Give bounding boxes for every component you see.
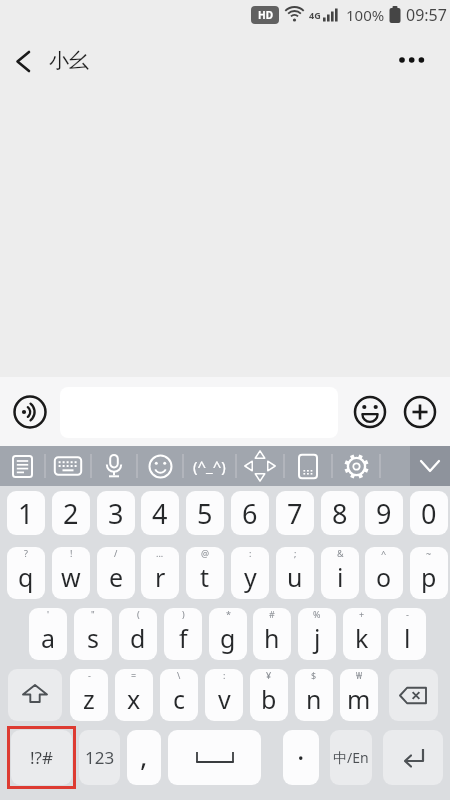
staticText: 1 (18, 495, 34, 532)
staticText: m (347, 682, 371, 716)
staticText: ) (182, 608, 185, 620)
staticText: + (359, 608, 365, 620)
staticText: 中/En (333, 748, 369, 767)
staticText: (^_^) (193, 456, 226, 476)
button[interactable]: @ (186, 547, 224, 599)
staticText: 2 (63, 495, 79, 532)
button[interactable]: 中/En (330, 730, 372, 785)
button[interactable]: - (70, 669, 108, 721)
button[interactable] (91, 446, 137, 486)
button[interactable] (168, 730, 261, 785)
button[interactable] (236, 446, 284, 486)
button[interactable]: % (298, 608, 336, 660)
button[interactable] (284, 446, 332, 486)
staticText: q (18, 560, 34, 594)
staticText: h (264, 621, 280, 655)
button[interactable]: ! (52, 547, 90, 599)
button[interactable]: * (209, 608, 247, 660)
button[interactable]: ( (119, 608, 157, 660)
button[interactable] (389, 669, 438, 721)
button[interactable]: = (115, 669, 153, 721)
button[interactable] (8, 669, 62, 721)
button[interactable]: ₩ (340, 669, 378, 721)
button[interactable]: ' (29, 608, 67, 660)
button[interactable]: & (321, 547, 359, 599)
staticText: g (220, 621, 236, 655)
staticText: 6 (242, 495, 258, 532)
staticText: : (249, 547, 252, 559)
staticText: * (226, 608, 231, 620)
staticText: % (313, 608, 321, 620)
button[interactable] (383, 730, 443, 785)
button[interactable]: " (74, 608, 112, 660)
button[interactable]: , (127, 730, 161, 785)
button[interactable]: \ (160, 669, 198, 721)
staticText: : (223, 669, 226, 681)
staticText: f (179, 621, 188, 655)
staticText: - (88, 669, 91, 681)
button[interactable]: / (97, 547, 135, 599)
button[interactable] (410, 446, 450, 486)
staticText: n (306, 682, 322, 716)
staticText: 9 (376, 495, 392, 532)
staticText: u (287, 560, 303, 594)
button[interactable]: 4 (141, 491, 179, 535)
button[interactable]: 8 (321, 491, 359, 535)
button[interactable]: ) (164, 608, 202, 660)
button[interactable] (352, 394, 388, 430)
staticText: ₩ (356, 669, 363, 681)
staticText: c (173, 682, 186, 716)
button[interactable] (332, 446, 380, 486)
staticText: ? (24, 547, 28, 559)
button[interactable]: ~ (410, 547, 448, 599)
button[interactable]: 2 (52, 491, 90, 535)
staticText: l (404, 621, 411, 655)
button[interactable]: ¥ (250, 669, 288, 721)
staticText: w (61, 560, 81, 594)
staticText: 7 (287, 495, 303, 532)
button[interactable]: : (205, 669, 243, 721)
staticText: 4 (152, 495, 168, 532)
button[interactable] (396, 44, 440, 76)
staticText: e (109, 560, 124, 594)
button[interactable]: ^ (365, 547, 403, 599)
button[interactable]: ; (276, 547, 314, 599)
button[interactable]: (^_^) (183, 446, 236, 486)
button[interactable]: - (388, 608, 426, 660)
staticText: ~ (426, 547, 432, 559)
button[interactable]: . (283, 730, 319, 785)
staticText: - (406, 608, 409, 620)
button[interactable]: 7 (276, 491, 314, 535)
button[interactable] (137, 446, 183, 486)
button[interactable]: # (253, 608, 291, 660)
staticText: p (421, 560, 437, 594)
staticText: j (314, 621, 321, 655)
button[interactable]: 1 (7, 491, 45, 535)
button[interactable] (45, 446, 91, 486)
button[interactable]: + (343, 608, 381, 660)
staticText: = (131, 669, 137, 681)
button[interactable] (402, 394, 438, 430)
button[interactable]: 5 (186, 491, 224, 535)
button[interactable]: $ (295, 669, 333, 721)
button[interactable]: !?# (11, 730, 72, 785)
button[interactable] (6, 45, 38, 77)
staticText: 09:57 (406, 4, 447, 26)
button[interactable] (11, 393, 49, 431)
button[interactable]: 9 (365, 491, 403, 535)
button[interactable]: 6 (231, 491, 269, 535)
staticText: 100% (346, 5, 385, 25)
button[interactable]: 123 (79, 730, 120, 785)
staticText: HD (258, 8, 273, 22)
staticText: ¥ (266, 669, 272, 681)
staticText: & (337, 547, 344, 559)
button[interactable]: : (231, 547, 269, 599)
button[interactable]: 0 (410, 491, 448, 535)
button[interactable]: ... (141, 547, 179, 599)
staticText: b (261, 682, 277, 716)
button[interactable] (0, 446, 45, 486)
button[interactable]: 3 (97, 491, 135, 535)
staticText: ! (70, 547, 73, 559)
button[interactable]: ? (7, 547, 45, 599)
